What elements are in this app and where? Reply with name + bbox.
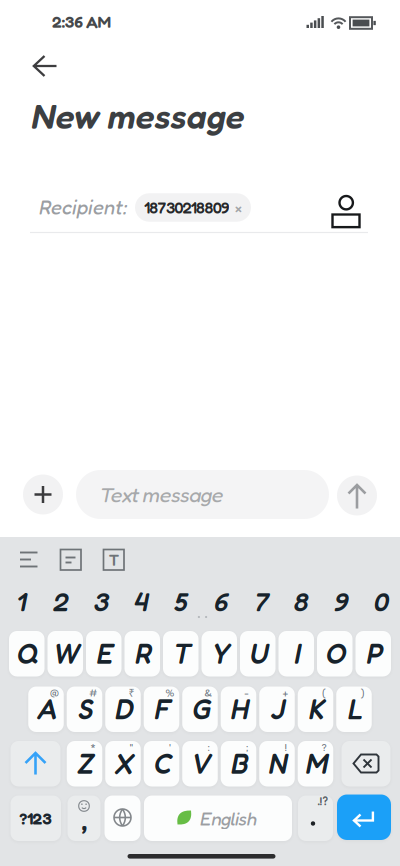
staticText: 0 <box>372 585 387 618</box>
staticText: B <box>230 747 247 780</box>
staticText: Q <box>16 637 38 670</box>
staticText: J <box>269 693 284 726</box>
staticText: 18730218809 <box>144 198 229 217</box>
staticText: L <box>346 693 361 726</box>
staticText: 4 <box>132 585 147 618</box>
staticText: N <box>267 747 286 780</box>
staticText: M <box>304 747 326 780</box>
staticText: 3 <box>92 585 107 618</box>
staticText: 2:36 AM <box>52 11 111 32</box>
staticText: T <box>109 550 119 569</box>
staticText: ' <box>169 740 171 753</box>
staticText: G <box>190 693 209 726</box>
staticText: 2 <box>52 585 68 618</box>
staticText: Y <box>211 637 228 670</box>
staticText: ( <box>322 686 326 699</box>
staticText: W <box>52 637 78 670</box>
staticText: A <box>36 693 55 726</box>
staticText: ) <box>360 686 364 699</box>
staticText: C <box>152 747 170 780</box>
staticText: " <box>129 740 133 753</box>
staticText: F <box>153 693 170 726</box>
staticText: ?123 <box>19 808 52 828</box>
staticText: 5 <box>173 585 187 618</box>
staticText: - <box>244 686 249 699</box>
staticText: 6 <box>213 585 227 618</box>
staticText: @ <box>50 686 59 699</box>
staticText: P <box>365 637 381 670</box>
staticText: : <box>207 740 209 753</box>
staticText: 8 <box>292 585 307 618</box>
staticText: × <box>235 199 242 216</box>
staticText: R <box>134 637 151 670</box>
staticText: I <box>293 637 299 670</box>
staticText: 1 <box>15 585 25 618</box>
staticText: H <box>229 693 247 726</box>
staticText: * <box>90 740 95 753</box>
staticText: .!? <box>317 794 327 808</box>
staticText: Recipient: <box>38 195 127 219</box>
staticText: S <box>77 693 92 726</box>
staticText: ; <box>246 740 248 753</box>
staticText: T <box>172 637 190 670</box>
staticText: E <box>95 637 112 670</box>
staticText: Text message <box>98 482 223 507</box>
staticText: D <box>114 693 132 726</box>
staticText: & <box>204 686 212 699</box>
staticText: New message <box>30 95 243 137</box>
staticText: Z <box>76 747 92 780</box>
staticText: 9 <box>333 585 347 618</box>
staticText: English <box>199 807 256 830</box>
staticText: ? <box>321 740 326 753</box>
staticText: X <box>113 747 132 780</box>
staticText: U <box>248 637 267 670</box>
staticText: K <box>307 693 323 726</box>
staticText: ₹ <box>128 685 134 700</box>
staticText: 7 <box>253 585 267 618</box>
staticText: , <box>81 805 87 836</box>
staticText: O <box>325 637 345 670</box>
staticText: % <box>165 686 174 699</box>
staticText: V <box>190 747 210 780</box>
staticText: # <box>89 686 97 699</box>
staticText: + <box>282 686 288 699</box>
staticText: ! <box>284 740 286 753</box>
